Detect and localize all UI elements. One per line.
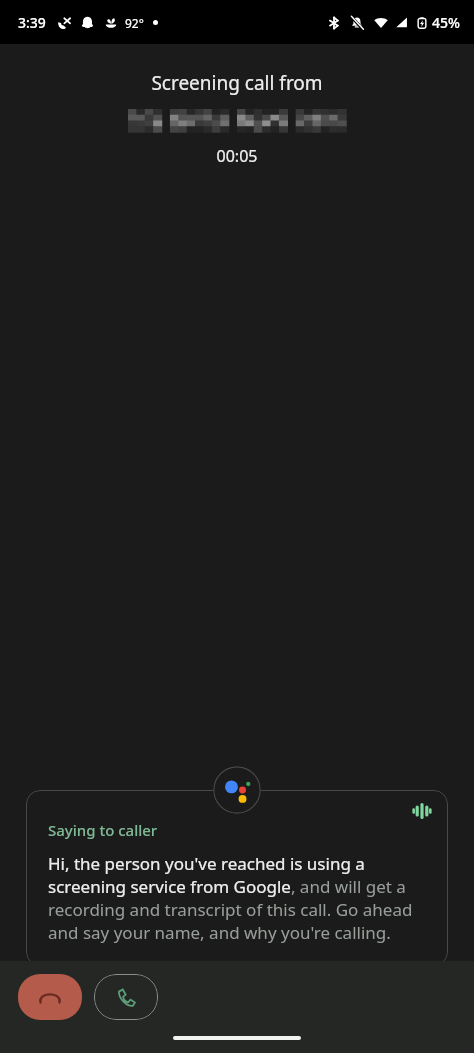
staticText: Saying to caller [48, 820, 158, 840]
staticText: 45% [432, 13, 460, 32]
staticText: 3:39 [18, 13, 46, 32]
button[interactable]: Answer call [94, 974, 158, 1020]
staticText: 92° [125, 15, 144, 31]
other: Audio waveform [414, 804, 430, 818]
staticText: Screening call from [0, 70, 474, 96]
staticText: Hi, the person you've reached is using a… [48, 852, 430, 944]
staticText: 00:05 [0, 145, 474, 167]
button[interactable]: Audio waveform [26, 790, 448, 966]
button[interactable]: End call [18, 974, 82, 1020]
